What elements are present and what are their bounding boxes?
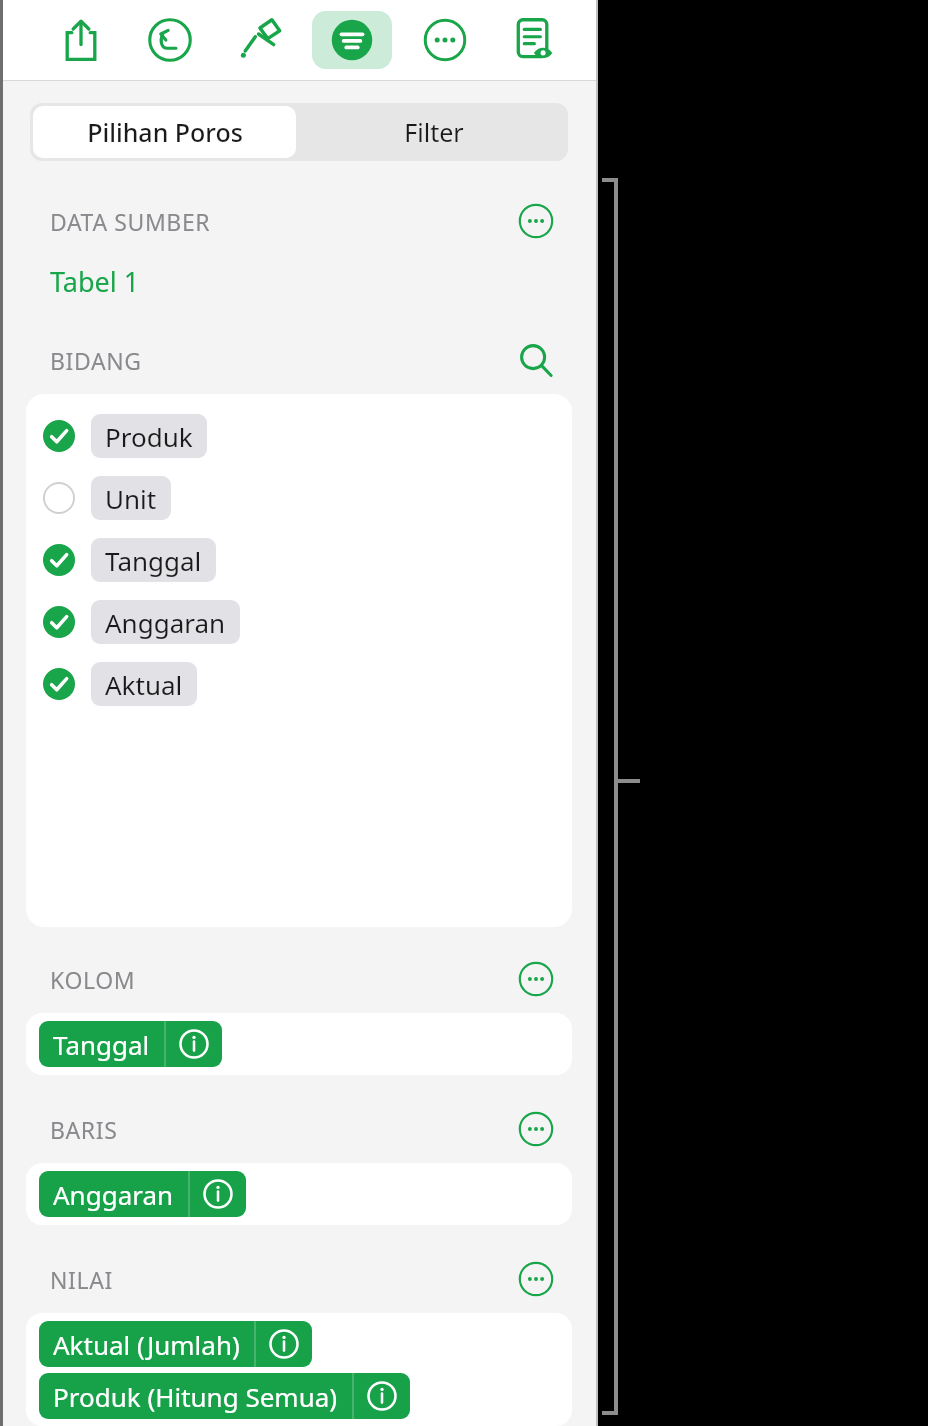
button[interactable]: Filter	[299, 103, 568, 161]
button[interactable]: More options for BARIS	[514, 1109, 558, 1149]
staticText: Produk	[105, 419, 193, 454]
button[interactable]: Unit	[26, 467, 572, 529]
staticText: Produk (Hitung Semua)	[53, 1379, 338, 1414]
button[interactable]: Info about Tanggal	[166, 1021, 222, 1067]
staticText: KOLOM	[50, 964, 136, 995]
staticText: Tanggal	[105, 543, 202, 578]
button[interactable]: Format	[224, 11, 294, 69]
staticText: Unit	[105, 481, 157, 516]
button[interactable]: Produk (Hitung Semua)	[39, 1373, 410, 1419]
staticText: Aktual	[105, 667, 183, 702]
button[interactable]: Tabel 1	[50, 263, 140, 300]
button[interactable]: Anggaran	[39, 1171, 246, 1217]
button[interactable]: More options for KOLOM	[514, 959, 558, 999]
button[interactable]: Pilihan Poros	[33, 106, 296, 158]
staticText: NILAI	[50, 1264, 113, 1295]
button[interactable]: Info about Anggaran	[190, 1171, 246, 1217]
button[interactable]: Produk	[26, 405, 572, 467]
button[interactable]: Info about Aktual (Jumlah)	[256, 1321, 312, 1367]
staticText: BIDANG	[50, 345, 142, 376]
button[interactable]: Share	[46, 11, 116, 69]
button[interactable]: Info about Produk (Hitung Semua)	[354, 1373, 410, 1419]
staticText: DATA SUMBER	[50, 206, 211, 237]
staticText: Tanggal	[53, 1027, 150, 1062]
staticText: Pilihan Poros	[87, 115, 243, 149]
button[interactable]: More	[410, 11, 480, 69]
button[interactable]: Aktual (Jumlah)	[39, 1321, 312, 1367]
staticText: Anggaran	[53, 1177, 174, 1212]
button[interactable]: More options for DATA SUMBER	[514, 201, 558, 241]
button[interactable]: Undo	[135, 11, 205, 69]
staticText: Anggaran	[105, 605, 226, 640]
staticText: BARIS	[50, 1114, 118, 1145]
button[interactable]: Organize	[312, 11, 392, 69]
button[interactable]: Anggaran	[26, 591, 572, 653]
staticText: Filter	[404, 115, 464, 149]
button[interactable]: Search fields	[514, 340, 558, 380]
button[interactable]: More options for NILAI	[514, 1259, 558, 1299]
button[interactable]: Tanggal	[26, 529, 572, 591]
button[interactable]: Tanggal	[39, 1021, 222, 1067]
staticText: Aktual (Jumlah)	[53, 1327, 240, 1362]
button[interactable]: Preview	[498, 11, 568, 69]
button[interactable]: Aktual	[26, 653, 572, 715]
